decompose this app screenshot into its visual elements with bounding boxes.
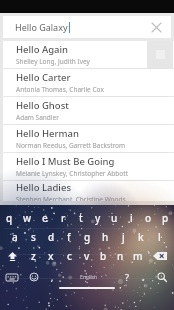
button[interactable]: w <box>18 211 36 225</box>
staticText: d <box>48 230 55 244</box>
staticText: Hello Ghost <box>16 99 69 112</box>
button[interactable]: Hello Carter <box>3 69 174 96</box>
staticText: Hello I Must Be Going <box>16 155 115 168</box>
button[interactable]: . <box>136 269 150 285</box>
button[interactable]: English <box>60 269 118 285</box>
staticText: o <box>145 211 152 225</box>
button[interactable]: u <box>106 211 123 225</box>
staticText: Hello Ladies <box>16 181 71 194</box>
button[interactable]: v <box>78 249 95 263</box>
button[interactable]: p <box>157 211 174 225</box>
staticText: Hello Again <box>16 43 69 56</box>
staticText: z <box>31 249 36 263</box>
button[interactable]: Shift <box>0 249 24 263</box>
staticText: u <box>111 211 118 225</box>
staticText: j <box>122 230 125 244</box>
staticText: English <box>80 274 98 281</box>
button[interactable]: Hello Ghost <box>3 97 174 124</box>
button[interactable]: z <box>24 249 42 263</box>
staticText: n <box>117 249 124 263</box>
button[interactable]: n <box>112 249 129 263</box>
staticText: Stephen Merchant, Christine Woods <box>16 195 126 201</box>
button[interactable]: Emoji <box>24 269 44 285</box>
button[interactable]: , <box>44 269 60 285</box>
staticText: p <box>162 211 169 225</box>
button[interactable]: Keyboard settings <box>0 269 24 285</box>
button[interactable]: g <box>78 230 96 244</box>
staticText: c <box>67 249 72 263</box>
staticText: v <box>84 249 90 263</box>
staticText: k <box>138 230 144 244</box>
button[interactable]: Hello Ladies <box>3 181 174 201</box>
button[interactable]: Clear search <box>147 18 165 36</box>
staticText: l <box>158 230 161 244</box>
staticText: g <box>84 230 91 244</box>
button[interactable]: k <box>132 230 150 244</box>
staticText: b <box>100 249 107 263</box>
staticText: Norman Reedus, Garrett Backstrom <box>16 141 126 150</box>
button[interactable]: Search <box>150 269 174 285</box>
staticText: Antonia Thomas, Charlie Cox <box>16 85 104 94</box>
staticText: x <box>48 249 54 263</box>
staticText: , <box>51 272 54 283</box>
staticText: i <box>130 211 133 225</box>
staticText: Shelley Long, Judith Ivey <box>16 57 90 66</box>
staticText: Hello Carter <box>16 71 71 84</box>
button[interactable]: t <box>72 211 89 225</box>
button[interactable]: f <box>60 230 78 244</box>
button[interactable]: a <box>6 230 24 244</box>
staticText: Adam Sandler <box>16 113 59 122</box>
button[interactable]: Hello Herman <box>3 125 174 152</box>
button[interactable]: o <box>140 211 157 225</box>
staticText: h <box>102 230 109 244</box>
button[interactable]: b <box>95 249 112 263</box>
button[interactable]: c <box>60 249 78 263</box>
staticText: f <box>67 230 71 244</box>
button[interactable]: ? <box>118 269 136 285</box>
button[interactable]: Hello Galaxy <box>3 16 171 38</box>
button[interactable]: d <box>42 230 60 244</box>
button[interactable]: y <box>89 211 106 225</box>
button[interactable]: e <box>36 211 54 225</box>
button[interactable]: x <box>42 249 60 263</box>
button[interactable]: q <box>0 211 18 225</box>
button[interactable]: h <box>96 230 114 244</box>
staticText: e <box>42 211 48 225</box>
staticText: Hello Galaxy <box>15 21 68 33</box>
staticText: r <box>61 211 66 225</box>
button[interactable]: l <box>150 230 168 244</box>
button[interactable]: m <box>129 249 146 263</box>
button[interactable]: r <box>54 211 72 225</box>
button[interactable]: Hello Again <box>3 41 174 68</box>
staticText: Melanie Lynskey, Christopher Abbott <box>16 169 128 178</box>
staticText: a <box>12 230 18 244</box>
staticText: y <box>95 211 101 225</box>
staticText: ? <box>125 271 129 283</box>
button[interactable]: Hello I Must Be Going <box>3 153 174 180</box>
button[interactable]: s <box>24 230 42 244</box>
staticText: w <box>23 211 32 225</box>
button[interactable]: Backspace <box>146 249 174 263</box>
button[interactable]: j <box>114 230 132 244</box>
staticText: q <box>6 211 13 225</box>
staticText: s <box>31 230 36 244</box>
button[interactable]: i <box>123 211 140 225</box>
staticText: Hello Herman <box>16 127 79 140</box>
staticText: . <box>142 272 145 283</box>
staticText: m <box>133 249 143 263</box>
staticText: t <box>79 211 83 225</box>
